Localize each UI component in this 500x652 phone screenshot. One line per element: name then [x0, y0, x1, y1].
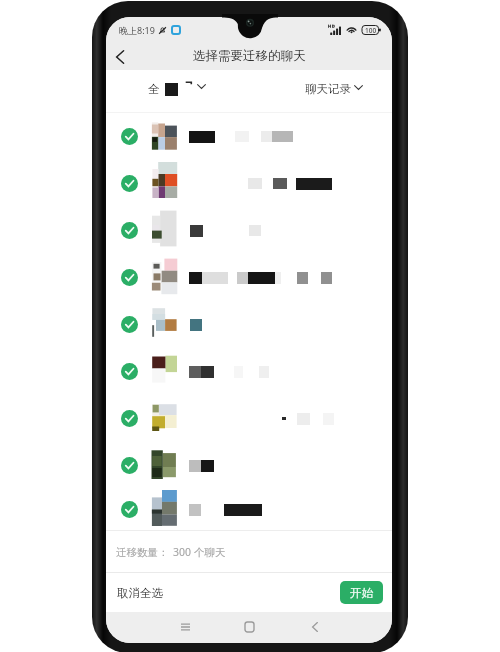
staticText: 300 个聊天 [173, 545, 226, 559]
staticText: 聊天记录 [305, 82, 351, 96]
button[interactable]: 聊天记录 [304, 79, 364, 103]
staticText: 100 [365, 26, 377, 35]
button[interactable] [106, 301, 392, 348]
staticText: 晚上8:19 [119, 24, 155, 36]
button[interactable] [106, 160, 392, 207]
button[interactable] [106, 442, 392, 489]
button[interactable]: 开始 [340, 581, 383, 604]
button[interactable] [106, 395, 392, 442]
staticText: 选择需要迁移的聊天 [193, 48, 306, 64]
button[interactable]: 取消全选 [111, 580, 169, 606]
button[interactable]: 返回 [300, 612, 330, 642]
staticText: 全 [148, 82, 160, 96]
staticText: 取消全选 [117, 586, 163, 600]
button[interactable] [106, 489, 392, 530]
staticText: 迁移数量： [116, 546, 169, 559]
button[interactable] [106, 254, 392, 301]
button[interactable]: 返回 [106, 43, 133, 70]
button[interactable] [106, 113, 392, 160]
button[interactable]: 主页 [234, 612, 264, 642]
button[interactable]: 最近任务 [170, 612, 200, 642]
staticText: 开始 [350, 586, 373, 600]
button[interactable] [106, 207, 392, 254]
button[interactable] [106, 348, 392, 395]
button[interactable]: 全 [144, 79, 210, 103]
